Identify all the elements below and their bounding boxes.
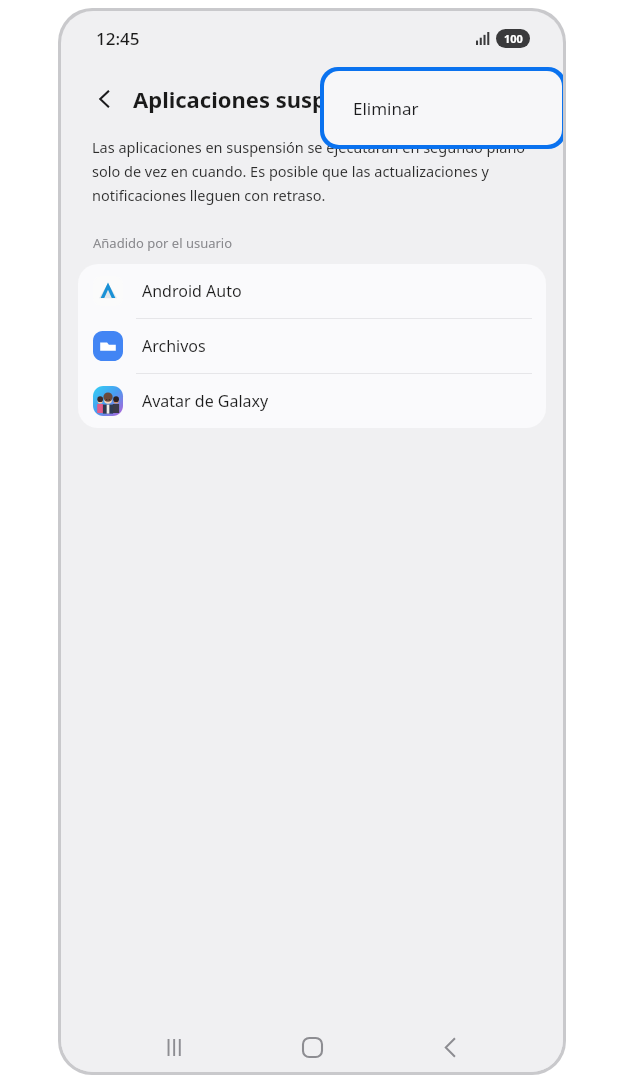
staticText: Eliminar [353, 97, 419, 120]
staticText: Aplicaciones suspendidas [133, 84, 413, 114]
button[interactable]: Recientes [151, 1023, 199, 1071]
staticText: Archivos [142, 335, 206, 357]
staticText: Android Auto [142, 280, 242, 302]
button[interactable]: Avatar de Galaxy [78, 374, 546, 428]
button[interactable]: Atrás [426, 1023, 474, 1071]
button[interactable]: Eliminar [324, 71, 562, 145]
staticText: 100 [504, 31, 523, 46]
button[interactable]: Android Auto [78, 264, 546, 319]
button[interactable]: Atrás [83, 77, 127, 121]
staticText: Las aplicaciones en suspensión se ejecut… [92, 137, 537, 205]
staticText: Avatar de Galaxy [142, 390, 269, 412]
button[interactable]: Archivos [78, 319, 546, 374]
staticText: Añadido por el usuario [93, 234, 233, 252]
button[interactable]: Inicio [288, 1023, 336, 1071]
staticText: 12:45 [96, 27, 140, 50]
